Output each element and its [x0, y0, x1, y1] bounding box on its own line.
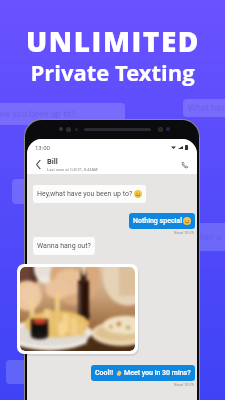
- staticText: Bill: [47, 157, 58, 166]
- staticText: Wanna hang out?: [37, 242, 91, 250]
- staticText: Read 10:25: [174, 382, 194, 387]
- button[interactable]: Wanna hang out?: [33, 237, 95, 255]
- button[interactable]: Back: [32, 158, 45, 171]
- staticText: Hey,what have you been up to?: [0, 109, 76, 120]
- staticText: Last seen at 1/4/21, 8:44AM: [47, 167, 98, 172]
- button[interactable]: Call: [177, 157, 192, 172]
- staticText: Hey,what have you been up to?: [37, 190, 133, 198]
- staticText: UNLIMITED: [26, 22, 200, 60]
- staticText: Read 10:25: [174, 230, 194, 235]
- staticText: Cool!!: [95, 369, 114, 377]
- staticText: Nothing special: [133, 217, 182, 225]
- button[interactable]: Nothing special: [129, 213, 195, 229]
- staticText: Private Texting: [30, 57, 195, 87]
- button[interactable]: Cool!!: [91, 365, 195, 381]
- staticText: Meet you in 30 mins?: [124, 369, 191, 377]
- staticText: What have: [188, 103, 225, 114]
- button[interactable]: Hey,what have you been up to?: [33, 185, 146, 203]
- staticText: 13:00: [35, 144, 50, 151]
- staticText: hen u: [199, 232, 221, 243]
